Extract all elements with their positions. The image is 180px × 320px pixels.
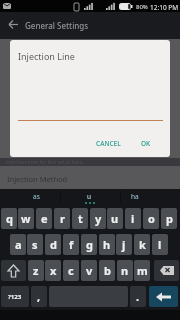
staticText: k	[139, 237, 146, 252]
button[interactable]: j	[116, 234, 132, 255]
staticText: u	[87, 192, 92, 201]
button[interactable]: c	[63, 260, 79, 281]
staticText: General Settings	[25, 20, 89, 31]
button[interactable]: as	[1, 189, 59, 206]
staticText: .	[136, 289, 140, 304]
button[interactable]: k	[134, 234, 150, 255]
button[interactable]: q	[1, 208, 17, 229]
staticText: injection note for this set of bars	[6, 159, 83, 166]
staticText: Injection Method	[7, 174, 68, 184]
button[interactable]	[154, 260, 179, 281]
staticText: j	[122, 237, 126, 252]
staticText: b	[104, 263, 111, 278]
staticText: u	[111, 211, 119, 226]
staticText: ,	[37, 289, 41, 304]
staticText: s	[32, 237, 38, 252]
button[interactable]: l	[152, 234, 168, 255]
staticText: ?123	[8, 293, 22, 301]
button[interactable]: ?123	[1, 286, 29, 307]
staticText: e	[41, 211, 48, 226]
staticText: z	[33, 263, 39, 278]
button[interactable]: z	[28, 260, 44, 281]
staticText: y	[95, 211, 102, 226]
button[interactable]: b	[99, 260, 115, 281]
button[interactable]: u	[107, 208, 123, 229]
staticText: 80%	[136, 3, 148, 11]
button[interactable]: i	[125, 208, 141, 229]
button[interactable]: OK	[132, 134, 160, 152]
staticText: i	[131, 211, 135, 226]
button[interactable]: d	[45, 234, 61, 255]
button[interactable]: a	[10, 234, 26, 255]
staticText: 12:10 PM	[150, 3, 179, 12]
button[interactable]: y	[90, 208, 106, 229]
staticText: x	[50, 263, 57, 278]
staticText: t	[78, 211, 83, 226]
staticText: f	[69, 237, 74, 252]
staticText: m	[137, 263, 148, 278]
staticText: v	[86, 263, 93, 278]
button[interactable]: ha	[121, 189, 179, 206]
button[interactable]: .	[130, 286, 146, 307]
button[interactable]: n	[117, 260, 133, 281]
staticText: p	[166, 211, 173, 226]
button[interactable]: o	[143, 208, 159, 229]
button[interactable]: m	[134, 260, 150, 281]
button[interactable]: CANCEL	[84, 134, 132, 152]
staticText: g	[86, 237, 93, 252]
button[interactable]: f	[63, 234, 79, 255]
staticText: w	[21, 211, 31, 226]
button[interactable]	[149, 286, 178, 307]
button[interactable]: g	[81, 234, 97, 255]
staticText: h	[103, 237, 111, 252]
button[interactable]: h	[99, 234, 115, 255]
button[interactable]: w	[18, 208, 34, 229]
staticText: as	[33, 192, 40, 201]
button[interactable]	[4, 15, 22, 33]
button[interactable]: u	[61, 189, 119, 206]
button[interactable]: v	[81, 260, 97, 281]
staticText: c	[68, 263, 74, 278]
button[interactable]: t	[72, 208, 88, 229]
staticText: r	[60, 211, 65, 226]
staticText: a	[15, 237, 22, 252]
button[interactable]: p	[161, 208, 177, 229]
staticText: OK	[141, 139, 151, 148]
button[interactable]	[1, 260, 26, 281]
button[interactable]: r	[54, 208, 70, 229]
button[interactable]: ,	[31, 286, 47, 307]
staticText: CANCEL	[96, 139, 121, 148]
staticText: ha	[131, 192, 139, 201]
staticText: o	[148, 211, 155, 226]
staticText: q	[6, 211, 13, 226]
button[interactable]: x	[45, 260, 61, 281]
staticText: Injection Line	[18, 50, 75, 62]
staticText: l	[158, 237, 162, 252]
staticText: n	[121, 263, 129, 278]
button[interactable]: s	[27, 234, 43, 255]
button[interactable]: e	[36, 208, 52, 229]
staticText: d	[50, 237, 57, 252]
